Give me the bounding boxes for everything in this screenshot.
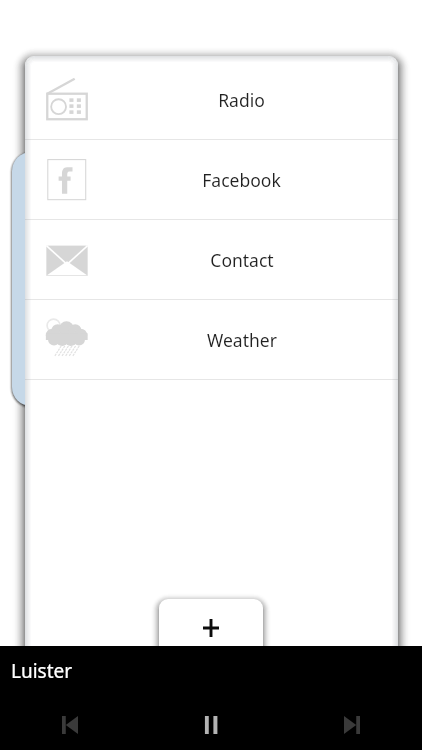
button[interactable]: Pause	[140, 697, 281, 750]
staticText: Luister	[11, 658, 73, 684]
button[interactable]: Weather	[25, 300, 398, 380]
button[interactable]: Radio	[25, 60, 398, 140]
button[interactable]: Next	[281, 697, 422, 750]
button[interactable]: Contact	[25, 220, 398, 300]
button[interactable]: Add	[159, 599, 263, 657]
staticText: Weather	[207, 328, 277, 352]
staticText: Contact	[210, 248, 274, 272]
button[interactable]: Previous	[0, 697, 140, 750]
button[interactable]: Facebook	[25, 140, 398, 220]
staticText: Radio	[218, 88, 265, 112]
staticText: Facebook	[202, 168, 281, 192]
